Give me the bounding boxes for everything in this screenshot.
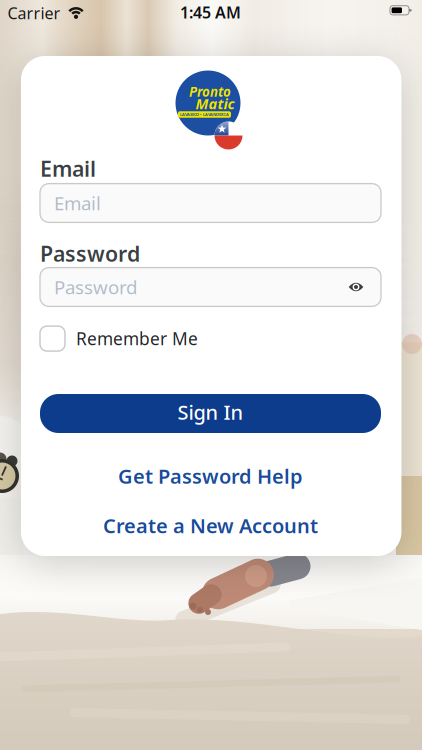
staticText: Pronto <box>189 83 231 100</box>
staticText: Email <box>54 191 101 215</box>
staticText: Password <box>40 239 140 268</box>
staticText: Create a New Account <box>103 512 318 539</box>
textField[interactable]: Password <box>40 268 381 306</box>
staticText: Carrier <box>7 2 60 24</box>
staticText: Email <box>40 154 96 183</box>
button[interactable]: Get Password Help <box>118 463 303 489</box>
button[interactable]: Create a New Account <box>103 512 318 539</box>
staticText: Matic <box>195 94 234 113</box>
staticText: LAVASECO • LAVANDERIA <box>180 112 229 117</box>
button[interactable]: Sign In <box>40 394 381 433</box>
staticText: Get Password Help <box>118 463 303 489</box>
button[interactable]: Show password <box>342 270 370 304</box>
textField[interactable]: Email <box>40 184 381 222</box>
staticText: Password <box>54 275 137 299</box>
button[interactable]: Remember Me <box>40 325 212 353</box>
staticText: 1:45 AM <box>180 2 241 23</box>
staticText: Remember Me <box>76 327 198 350</box>
staticText: Sign In <box>177 399 243 425</box>
